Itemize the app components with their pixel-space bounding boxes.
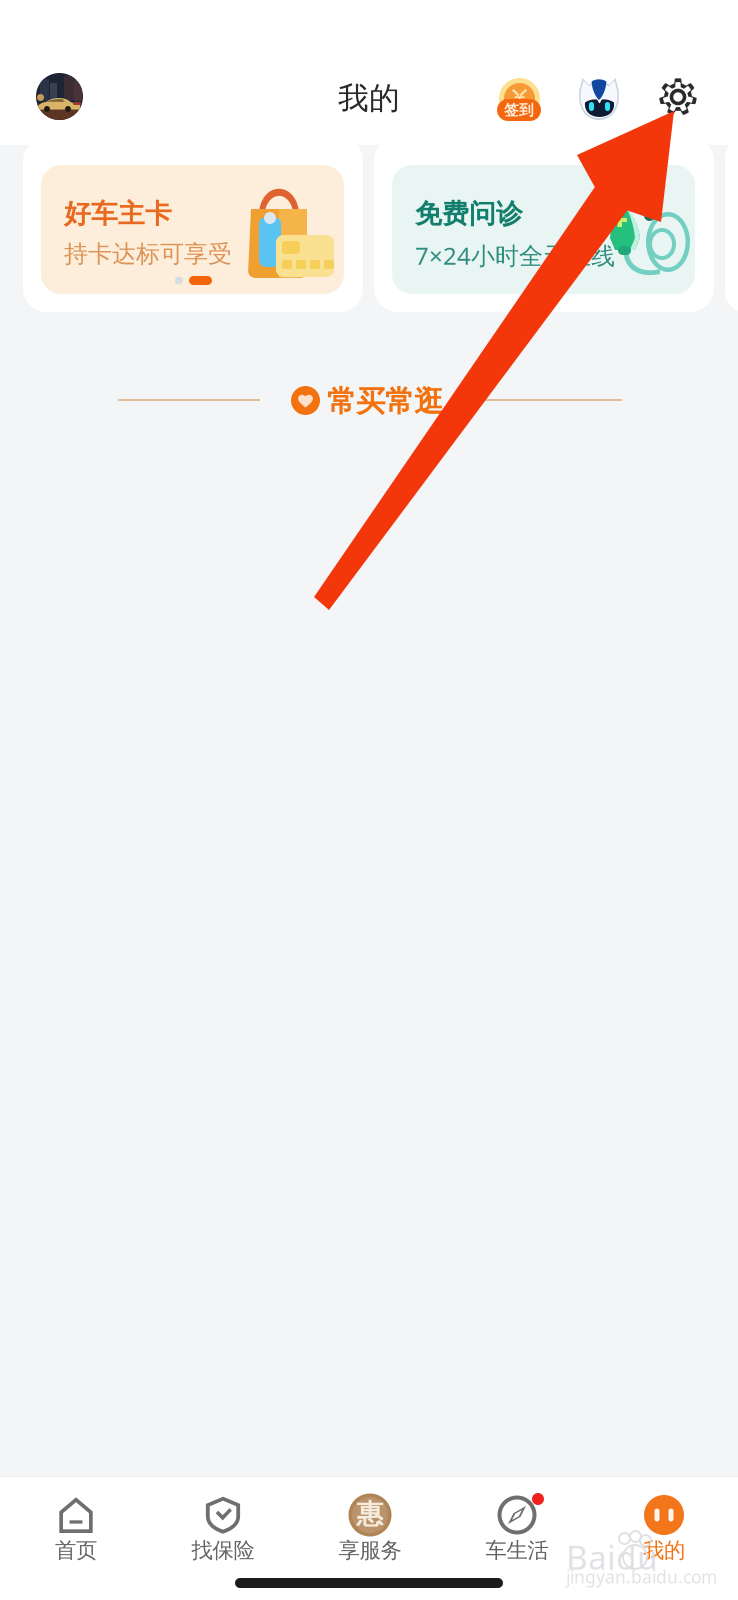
staticText: 我的	[643, 1537, 685, 1564]
button[interactable]: 设置	[652, 71, 704, 123]
staticText: 惠	[356, 1497, 383, 1531]
button[interactable]: 车生活	[443, 1479, 590, 1571]
staticText: 我的	[338, 79, 400, 118]
staticText: 签到	[504, 101, 534, 119]
staticText: 享服务	[338, 1537, 401, 1564]
button[interactable]: 智能助手	[577, 77, 621, 121]
staticText: 免费问诊	[415, 197, 523, 231]
button[interactable]: 惠	[296, 1479, 443, 1571]
button[interactable]: 首页	[2, 1479, 149, 1571]
staticText: 7×24小时全天在线	[415, 239, 615, 272]
button[interactable]: 好车主卡	[23, 137, 363, 312]
staticText: 好车主卡	[64, 197, 172, 231]
staticText: Baidu	[566, 1534, 658, 1579]
staticText: 首页	[55, 1537, 97, 1564]
staticText: 车生活	[485, 1537, 548, 1564]
button[interactable]: 找保险	[149, 1479, 296, 1571]
button[interactable]: Profile photo	[36, 73, 83, 120]
button[interactable]: 我的	[590, 1479, 737, 1571]
button[interactable]: 免费问诊	[374, 137, 714, 312]
button[interactable]: 签到	[490, 72, 546, 132]
staticText: 持卡达标可享受	[64, 239, 232, 269]
staticText: jingyan.baidu.com	[566, 1565, 717, 1589]
staticText: 常买常逛	[327, 383, 443, 420]
staticText: 找保险	[191, 1537, 254, 1564]
